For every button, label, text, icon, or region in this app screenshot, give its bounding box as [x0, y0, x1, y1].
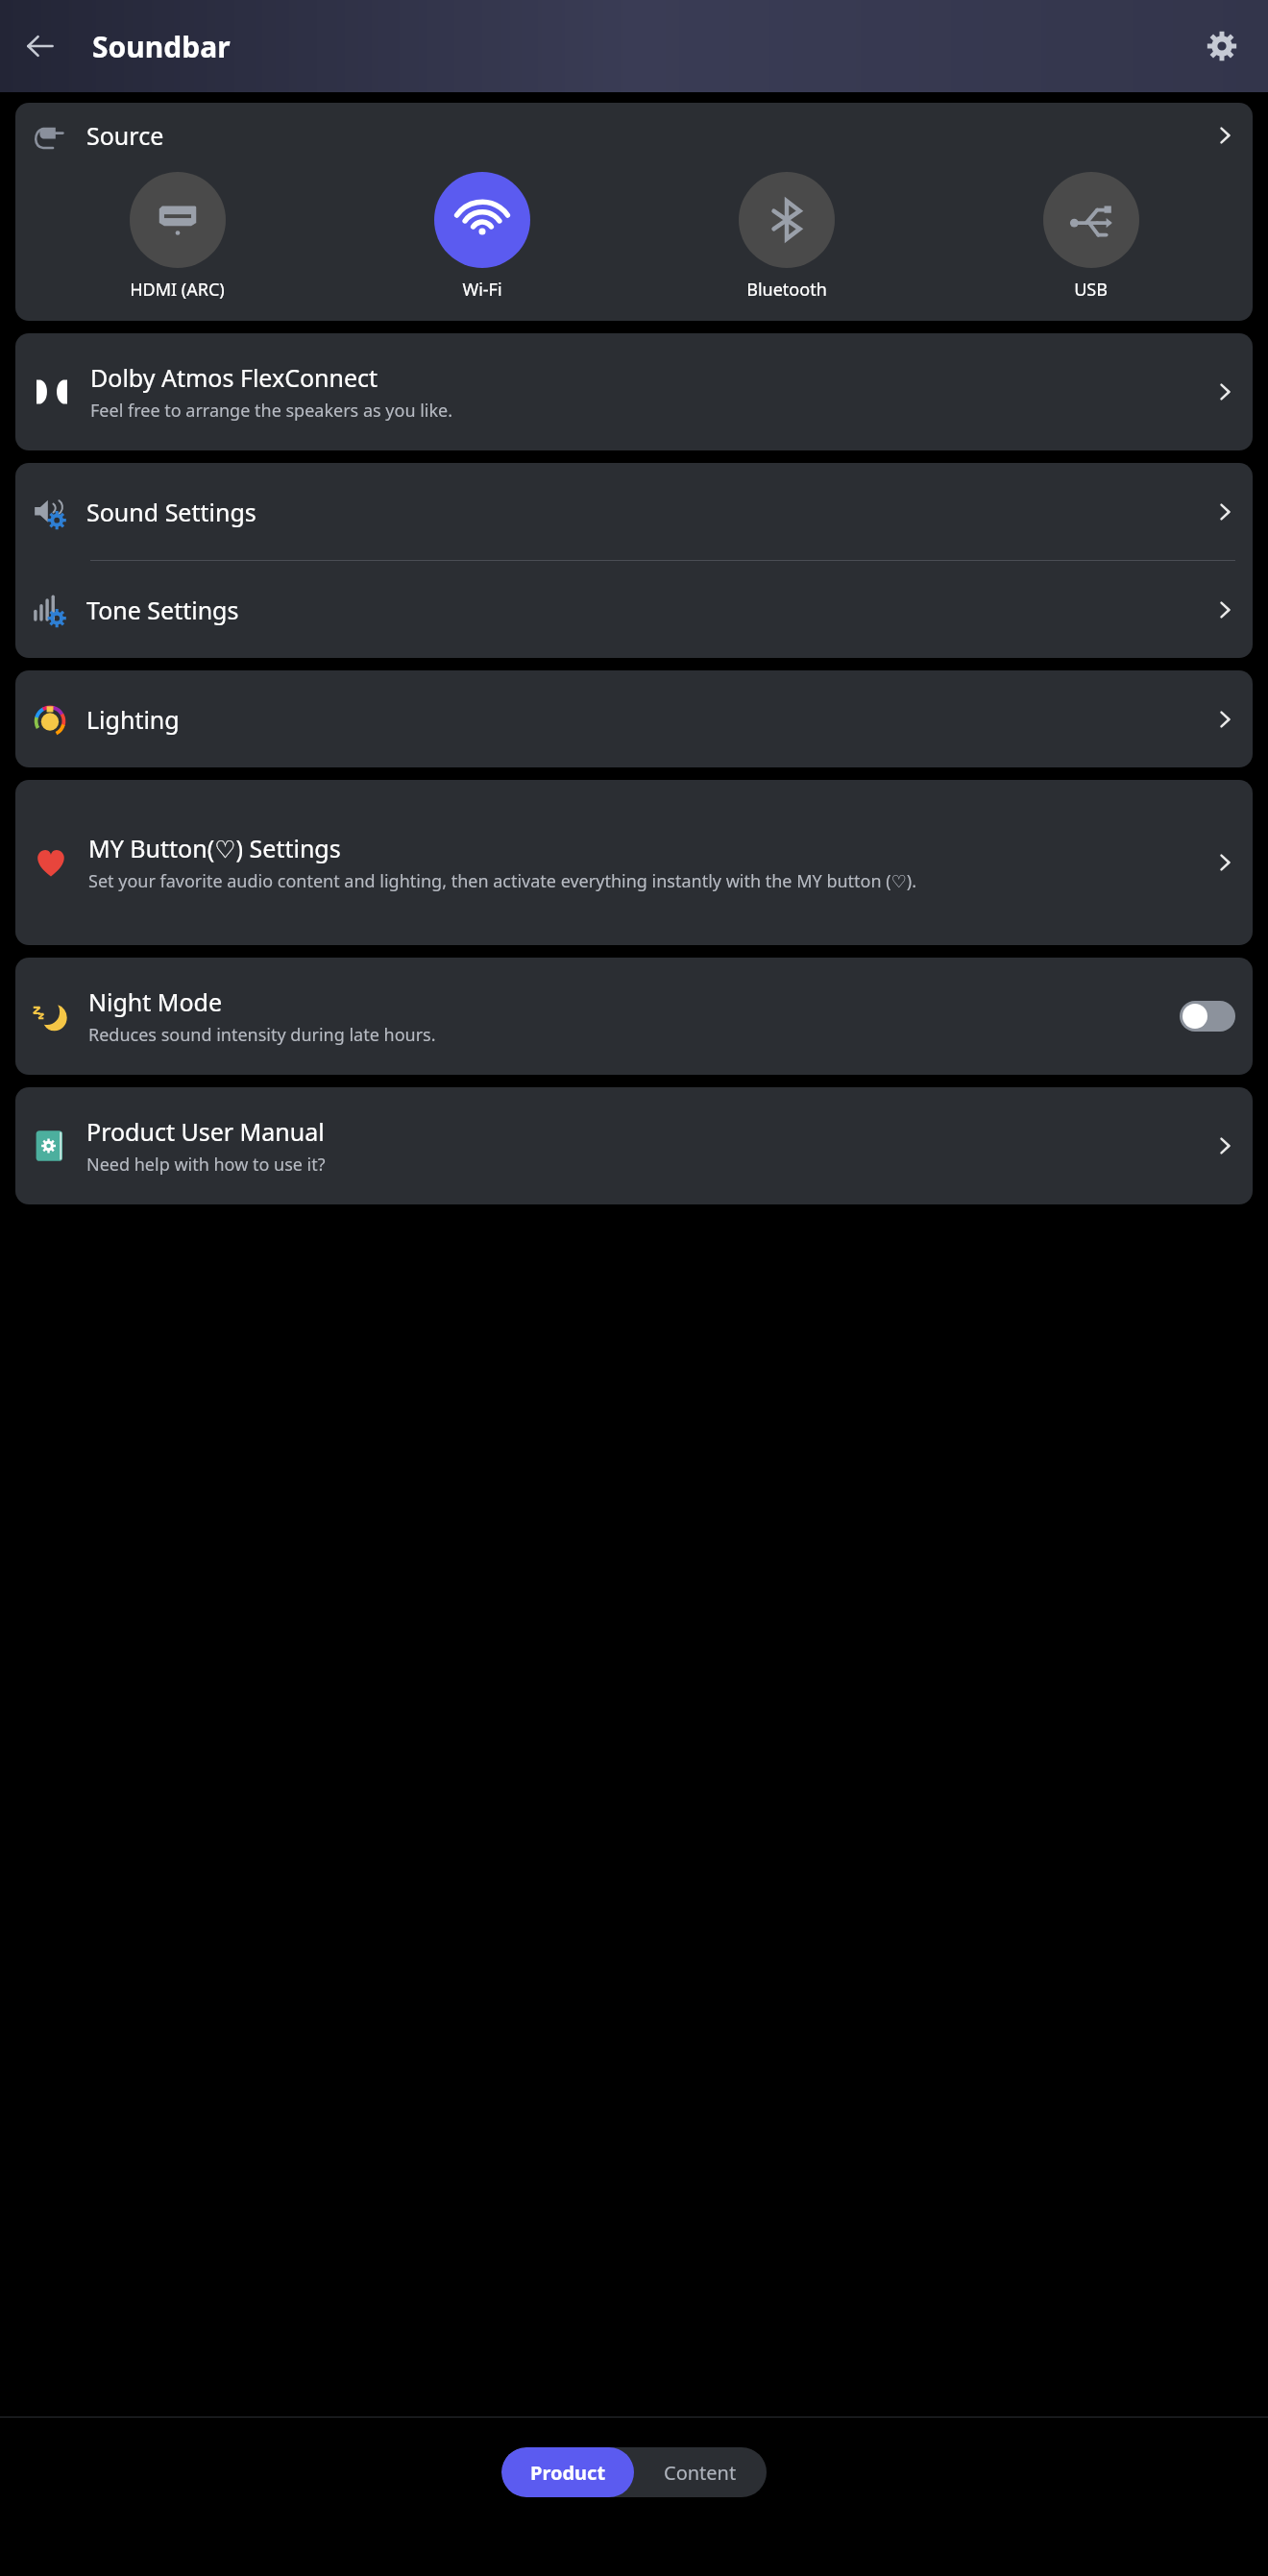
staticText: Tone Settings: [86, 594, 239, 626]
staticText: Source: [86, 119, 164, 152]
button[interactable]: MY Button(♡) Settings: [15, 780, 1253, 945]
button[interactable]: HDMI (ARC): [25, 170, 329, 304]
button[interactable]: Night Mode: [15, 958, 1253, 1075]
staticText: Reduces sound intensity during late hour…: [88, 1023, 436, 1047]
button[interactable]: Content: [634, 2447, 767, 2497]
button[interactable]: Product User Manual: [15, 1087, 1253, 1204]
staticText: Soundbar: [92, 27, 231, 66]
staticText: Set your favorite audio content and ligh…: [88, 869, 917, 893]
staticText: Night Mode: [88, 985, 223, 1018]
button[interactable]: Sound Settings: [15, 463, 1253, 560]
staticText: MY Button(♡) Settings: [88, 832, 341, 864]
staticText: Content: [664, 2460, 737, 2486]
staticText: Need help with how to use it?: [86, 1153, 326, 1177]
staticText: Dolby Atmos FlexConnect: [90, 361, 378, 394]
staticText: Feel free to arrange the speakers as you…: [90, 399, 453, 423]
staticText: Wi-Fi: [462, 278, 502, 302]
staticText: Sound Settings: [86, 496, 256, 528]
button[interactable]: Bluetooth: [634, 170, 939, 304]
button[interactable]: Settings: [1195, 19, 1249, 73]
button[interactable]: USB: [939, 170, 1243, 304]
staticText: Bluetooth: [746, 278, 827, 302]
staticText: Product: [530, 2460, 606, 2486]
button[interactable]: Night Mode toggle: [1180, 1001, 1235, 1032]
button[interactable]: Wi-Fi: [329, 170, 634, 304]
staticText: Lighting: [86, 703, 180, 736]
button[interactable]: Tone Settings: [15, 561, 1253, 658]
staticText: Product User Manual: [86, 1115, 325, 1148]
staticText: HDMI (ARC): [130, 278, 225, 302]
staticText: USB: [1074, 278, 1108, 302]
button[interactable]: Lighting: [15, 670, 1253, 767]
button[interactable]: Product: [501, 2447, 634, 2497]
button[interactable]: Source: [15, 103, 1253, 168]
button[interactable]: Dolby Atmos FlexConnect: [15, 333, 1253, 450]
button[interactable]: Back: [13, 19, 67, 73]
